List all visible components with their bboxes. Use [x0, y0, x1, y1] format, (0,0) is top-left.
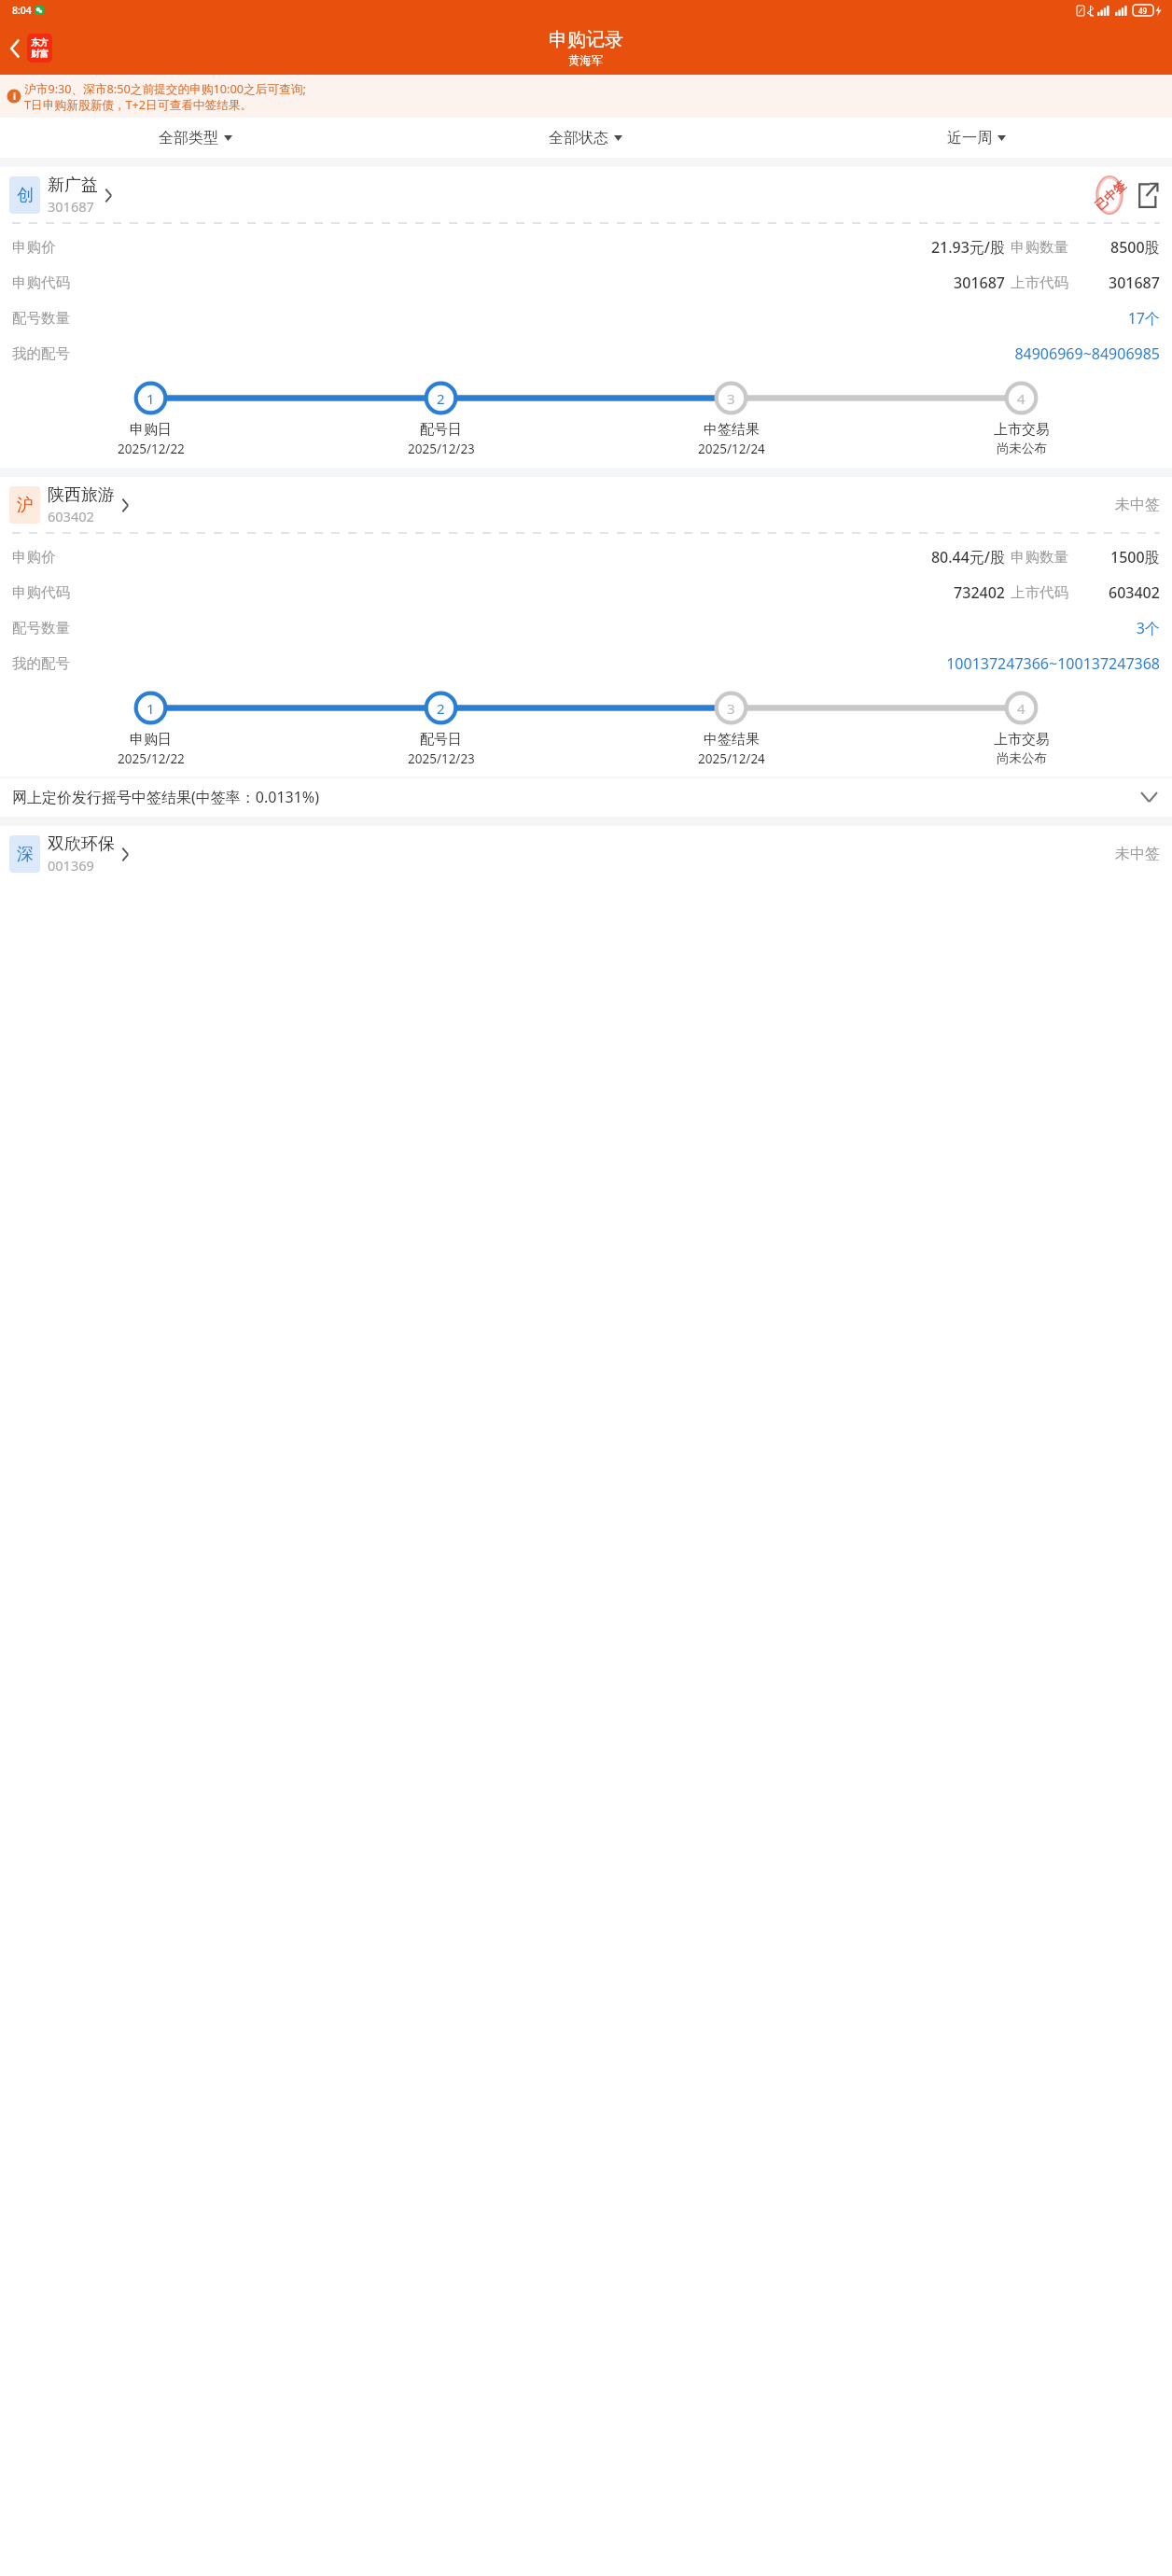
staticText: 2025/12/24	[698, 750, 765, 767]
staticText: 中签结果	[704, 421, 760, 439]
staticText: 财富	[31, 49, 49, 60]
staticText: 创	[17, 185, 34, 206]
staticText: 中签结果	[704, 731, 760, 749]
staticText: 申购数量	[1011, 548, 1068, 567]
staticText: 深	[17, 844, 34, 865]
button[interactable]: 近一周	[781, 118, 1172, 158]
staticText: 上市代码	[1011, 273, 1068, 292]
staticText: 沪市9:30、深市8:50之前提交的申购10:00之后可查询;	[24, 80, 306, 96]
staticText: i	[13, 90, 16, 103]
staticText: 301687	[1109, 273, 1160, 293]
staticText: 申购日	[130, 731, 172, 749]
staticText: 黄海军	[568, 53, 604, 68]
staticText: 2025/12/22	[118, 441, 185, 457]
staticText: 申购数量	[1011, 238, 1068, 257]
button[interactable]: 沪	[9, 484, 130, 525]
staticText: 2025/12/22	[118, 750, 185, 767]
staticText: 申购价	[12, 548, 56, 567]
button[interactable]: 网上定价发行摇号中签结果(中签率：0.0131%)	[0, 777, 1172, 817]
button[interactable]: 创	[9, 175, 113, 216]
button[interactable]: Back	[4, 30, 56, 66]
staticText: 1500股	[1110, 547, 1160, 567]
staticText: 近一周	[947, 129, 992, 147]
staticText: 4	[1017, 389, 1025, 408]
staticText: 新广益	[48, 175, 98, 196]
staticText: 8:04	[12, 4, 32, 17]
staticText: 301687	[70, 273, 1005, 293]
staticText: 我的配号	[12, 654, 70, 673]
staticText: 603402	[48, 507, 94, 525]
staticText: 17个	[70, 308, 1160, 329]
staticText: 申购记录	[549, 28, 623, 51]
staticText: 8500股	[1110, 237, 1160, 258]
staticText: 2	[437, 389, 445, 408]
staticText: 尚未公布	[997, 750, 1047, 766]
button[interactable]: 全部类型	[0, 118, 390, 158]
staticText: 上市代码	[1011, 583, 1068, 602]
staticText: 3个	[70, 618, 1160, 638]
staticText: 上市交易	[994, 421, 1050, 439]
staticText: 80.44元/股	[56, 547, 1005, 567]
staticText: 603402	[1109, 582, 1160, 603]
staticText: 49	[1138, 6, 1148, 16]
staticText: 申购价	[12, 238, 56, 257]
button[interactable]: 全部状态	[390, 118, 781, 158]
staticText: 未中签	[1115, 496, 1160, 514]
staticText: 配号数量	[12, 309, 70, 328]
staticText: 已中签	[1091, 177, 1129, 213]
staticText: 84906969~84906985	[70, 343, 1160, 364]
staticText: 全部类型	[159, 129, 218, 147]
staticText: 陕西旅游	[48, 484, 115, 506]
staticText: 21.93元/股	[56, 237, 1005, 258]
staticText: 100137247366~100137247368	[70, 653, 1160, 674]
staticText: 配号日	[420, 731, 462, 749]
staticText: 我的配号	[12, 344, 70, 363]
staticText: 未中签	[1115, 845, 1160, 863]
staticText: 申购日	[130, 421, 172, 439]
staticText: 2025/12/23	[408, 441, 475, 457]
staticText: 申购代码	[12, 583, 70, 602]
staticText: 732402	[70, 582, 1005, 603]
staticText: 配号日	[420, 421, 462, 439]
staticText: 1	[146, 699, 155, 718]
staticText: 双欣环保	[48, 833, 115, 855]
staticText: 配号数量	[12, 619, 70, 637]
staticText: 沪	[17, 495, 34, 516]
staticText: 001369	[48, 856, 94, 875]
staticText: 东方	[31, 37, 49, 49]
staticText: 全部状态	[549, 129, 608, 147]
staticText: 网上定价发行摇号中签结果(中签率：0.0131%)	[12, 787, 1141, 807]
staticText: 2025/12/24	[698, 441, 765, 457]
staticText: 3	[727, 699, 735, 718]
staticText: 尚未公布	[997, 441, 1047, 456]
staticText: 2025/12/23	[408, 750, 475, 767]
staticText: 上市交易	[994, 731, 1050, 749]
staticText: 4	[1017, 699, 1025, 718]
staticText: 301687	[48, 197, 94, 216]
staticText: 申购代码	[12, 273, 70, 292]
staticText: 2	[437, 699, 445, 718]
staticText: 3	[727, 389, 735, 408]
button[interactable]: Share	[1129, 176, 1165, 215]
staticText: 1	[146, 389, 155, 408]
staticText: T日申购新股新债，T+2日可查看中签结果。	[24, 96, 253, 112]
button[interactable]: 深	[9, 833, 130, 875]
